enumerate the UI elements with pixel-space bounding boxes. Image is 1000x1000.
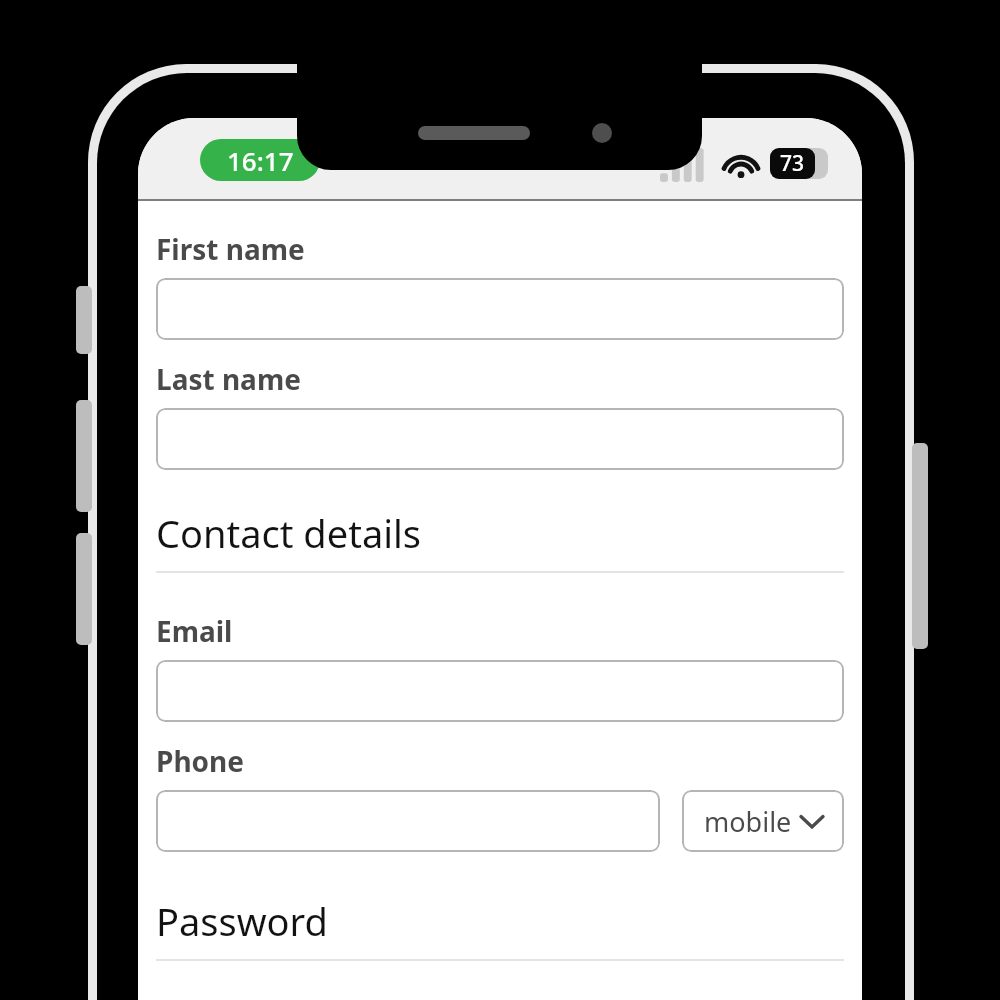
staticText: 16:17 — [227, 143, 294, 178]
staticText: mobile — [704, 803, 792, 840]
button[interactable]: Email — [156, 612, 233, 650]
button[interactable]: mobile — [682, 790, 844, 852]
staticText: Email — [156, 612, 233, 650]
button[interactable]: Power — [912, 443, 928, 649]
staticText: Contact details — [156, 507, 422, 559]
button[interactable] — [156, 408, 844, 470]
button[interactable] — [156, 278, 844, 340]
button[interactable]: Volume down — [76, 533, 92, 645]
button[interactable]: Last name — [156, 360, 301, 398]
button[interactable]: Phone — [156, 742, 245, 780]
button[interactable] — [156, 790, 660, 852]
button[interactable]: Silent switch — [76, 286, 92, 354]
staticText: Phone — [156, 742, 245, 780]
staticText: 73 — [780, 149, 805, 178]
staticText: Last name — [156, 360, 301, 398]
button[interactable]: First name — [156, 230, 305, 268]
button[interactable] — [156, 660, 844, 722]
staticText: Password — [156, 895, 328, 947]
staticText: First name — [156, 230, 305, 268]
button[interactable]: Volume up — [76, 400, 92, 512]
